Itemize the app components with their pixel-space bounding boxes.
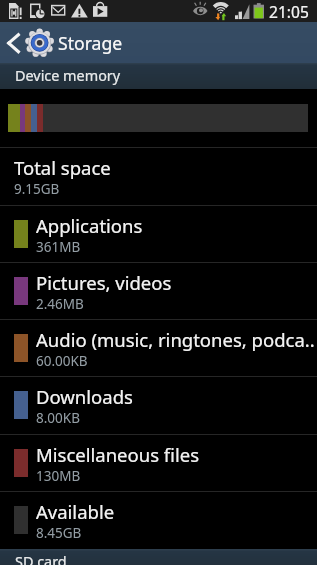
button[interactable]: Available [0,492,317,548]
staticText: Available [36,499,115,524]
staticText: 8.45GB [36,524,82,542]
staticText: 130MB [36,467,81,485]
staticText: Audio (music, ringtones, podca.. [36,327,315,352]
staticText: Miscellaneous files [36,442,200,467]
other: Navigate up, Storage [0,22,57,63]
staticText: Applications [36,213,143,238]
staticText: 361MB [36,238,81,256]
staticText: 60.00KB [36,352,88,370]
staticText: 9.15GB [14,180,60,198]
staticText: Device memory [15,66,121,86]
staticText: Pictures, videos [36,270,172,295]
staticText: 21:05 [269,1,309,22]
staticText: 2.46MB [36,295,84,313]
staticText: SD card [15,552,67,565]
staticText: 8.00KB [36,409,80,427]
staticText: Total space [14,155,111,180]
staticText: Storage [58,31,123,55]
button[interactable]: Pictures, videos [0,263,317,319]
button[interactable]: Navigate up, Storage [0,22,122,63]
button[interactable]: Downloads [0,377,317,433]
button[interactable]: Total space [0,148,317,204]
staticText: Downloads [36,384,133,409]
button[interactable]: Miscellaneous files [0,435,317,491]
button[interactable]: Applications [0,206,317,262]
button[interactable]: Audio (music, ringtones, podca.. [0,320,317,376]
